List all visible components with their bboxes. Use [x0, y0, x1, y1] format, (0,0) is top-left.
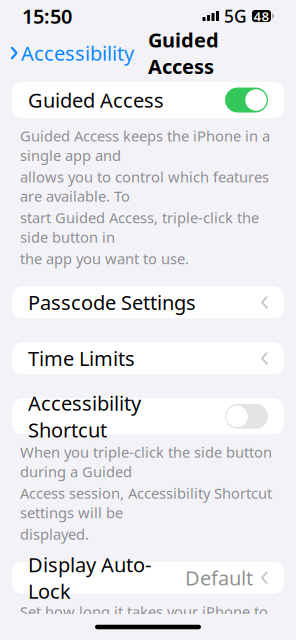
staticText: Guided Access keeps the iPhone in a sing…	[20, 126, 270, 165]
button[interactable]: Guided Access	[12, 82, 284, 118]
staticText: the app you want to use.	[20, 249, 189, 268]
staticText: Access session, Accessibility Shortcut s…	[20, 483, 272, 522]
staticText: Guided Access	[28, 87, 164, 113]
staticText: Accessibility	[21, 40, 134, 66]
staticText: Set how long it takes your iPhone to aut…	[20, 602, 268, 640]
staticText: Default	[185, 564, 253, 591]
staticText: allows you to control which features are…	[20, 167, 269, 206]
button[interactable]: Time Limits	[12, 342, 284, 374]
button[interactable]: Passcode Settings	[12, 286, 284, 318]
button[interactable]: Display Auto-Lock	[12, 562, 284, 594]
staticText: Guided Access	[148, 26, 219, 79]
staticText: 15:50	[22, 3, 72, 29]
staticText: Display Auto-Lock	[28, 551, 151, 604]
staticText: Time Limits	[28, 345, 135, 372]
staticText: When you triple-click the side button du…	[20, 442, 272, 481]
staticText: start Guided Access, triple-click the si…	[20, 208, 259, 247]
staticText: 48	[253, 7, 269, 25]
staticText: displayed.	[20, 524, 89, 544]
button[interactable]: Accessibility Shortcut	[12, 398, 284, 434]
button[interactable]: Accessibility	[10, 34, 140, 72]
staticText: Accessibility Shortcut	[28, 390, 141, 443]
staticText: 5G	[224, 4, 247, 27]
staticText: Passcode Settings	[28, 289, 196, 316]
